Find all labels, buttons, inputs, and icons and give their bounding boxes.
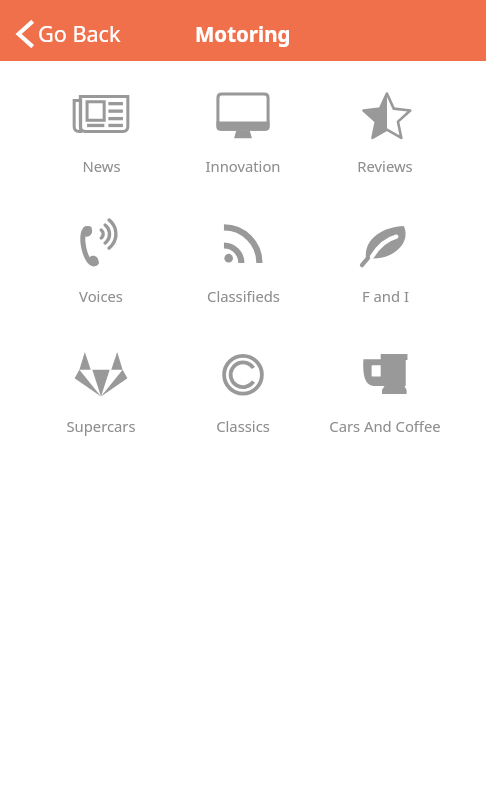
button[interactable]: Go Back: [4, 12, 131, 55]
staticText: F and I: [362, 286, 409, 306]
button[interactable]: Voices: [30, 213, 172, 343]
staticText: Motoring: [195, 20, 291, 48]
button[interactable]: Cars And Coffee: [314, 343, 456, 473]
staticText: Classifieds: [207, 286, 280, 306]
button[interactable]: Classifieds: [172, 213, 314, 343]
staticText: Supercars: [66, 416, 136, 436]
button[interactable]: News: [30, 83, 172, 213]
staticText: Reviews: [357, 156, 413, 176]
button[interactable]: Innovation: [172, 83, 314, 213]
staticText: Go Back: [38, 19, 121, 48]
staticText: Innovation: [205, 156, 281, 176]
button[interactable]: Reviews: [314, 83, 456, 213]
button[interactable]: Classics: [172, 343, 314, 473]
staticText: Voices: [79, 286, 123, 306]
button[interactable]: Supercars: [30, 343, 172, 473]
staticText: News: [82, 156, 121, 176]
button[interactable]: F and I: [314, 213, 456, 343]
staticText: Cars And Coffee: [329, 416, 441, 436]
staticText: Classics: [216, 416, 270, 436]
